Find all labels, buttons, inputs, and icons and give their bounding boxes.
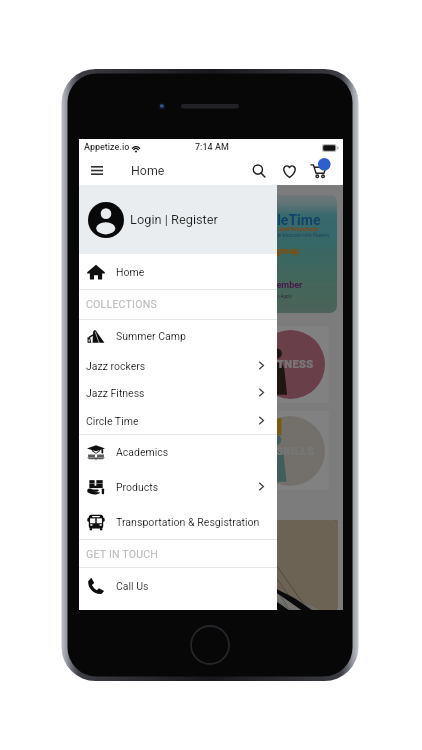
staticText: CircleTime <box>252 212 321 228</box>
button[interactable]: Academics <box>79 434 277 469</box>
staticText: GET IN TOUCH <box>86 548 159 560</box>
button[interactable]: Search <box>247 159 271 183</box>
staticText: September <box>258 280 303 291</box>
staticText: Home <box>131 163 165 178</box>
button[interactable]: Cart <box>307 159 331 183</box>
staticText: Jazz Fitness <box>86 387 145 399</box>
staticText: T SKILLS <box>266 445 315 458</box>
staticText: Home <box>116 266 145 278</box>
staticText: Daycare and Preschool <box>256 225 318 232</box>
button[interactable]: Transportation & Resgistration <box>79 504 277 539</box>
staticText: 7:14 AM <box>195 142 229 153</box>
staticText: FITNESS <box>267 358 314 371</box>
staticText: Products <box>116 481 159 493</box>
staticText: Call Us <box>116 580 149 592</box>
button[interactable]: FITNESS <box>95 326 329 403</box>
staticText: Summer Camp <box>116 330 186 342</box>
button[interactable]: Wishlist <box>277 159 301 183</box>
staticText: Jazz rockers <box>86 360 146 372</box>
staticText: & Conditions Apply <box>254 294 292 299</box>
staticText: Circle Time <box>86 415 139 427</box>
button[interactable]: Summer Camp <box>79 319 277 352</box>
staticText: Playgroup <box>258 246 300 257</box>
staticText: Appetize.io <box>84 142 130 153</box>
button[interactable]: Products <box>79 469 277 504</box>
button[interactable]: Circle Time <box>79 407 277 434</box>
button[interactable] <box>86 520 338 610</box>
button[interactable]: Login | Register <box>79 185 277 254</box>
button[interactable]: Call Us <box>79 568 277 603</box>
staticText: Transportation & Resgistration <box>116 516 260 528</box>
button[interactable]: Home <box>79 254 277 289</box>
staticText: Academics <box>116 446 169 458</box>
button[interactable]: Jazz rockers <box>79 352 277 379</box>
button[interactable]: CircleTime <box>86 195 337 313</box>
button[interactable]: T SKILLS <box>95 411 329 490</box>
staticText: Where our little blossom into flowers <box>248 232 330 238</box>
button[interactable]: Open navigation menu <box>85 159 108 182</box>
button[interactable]: Jazz Fitness <box>79 379 277 406</box>
staticText: Login | Register <box>130 212 218 227</box>
staticText: COLLECTIONS <box>86 298 157 310</box>
